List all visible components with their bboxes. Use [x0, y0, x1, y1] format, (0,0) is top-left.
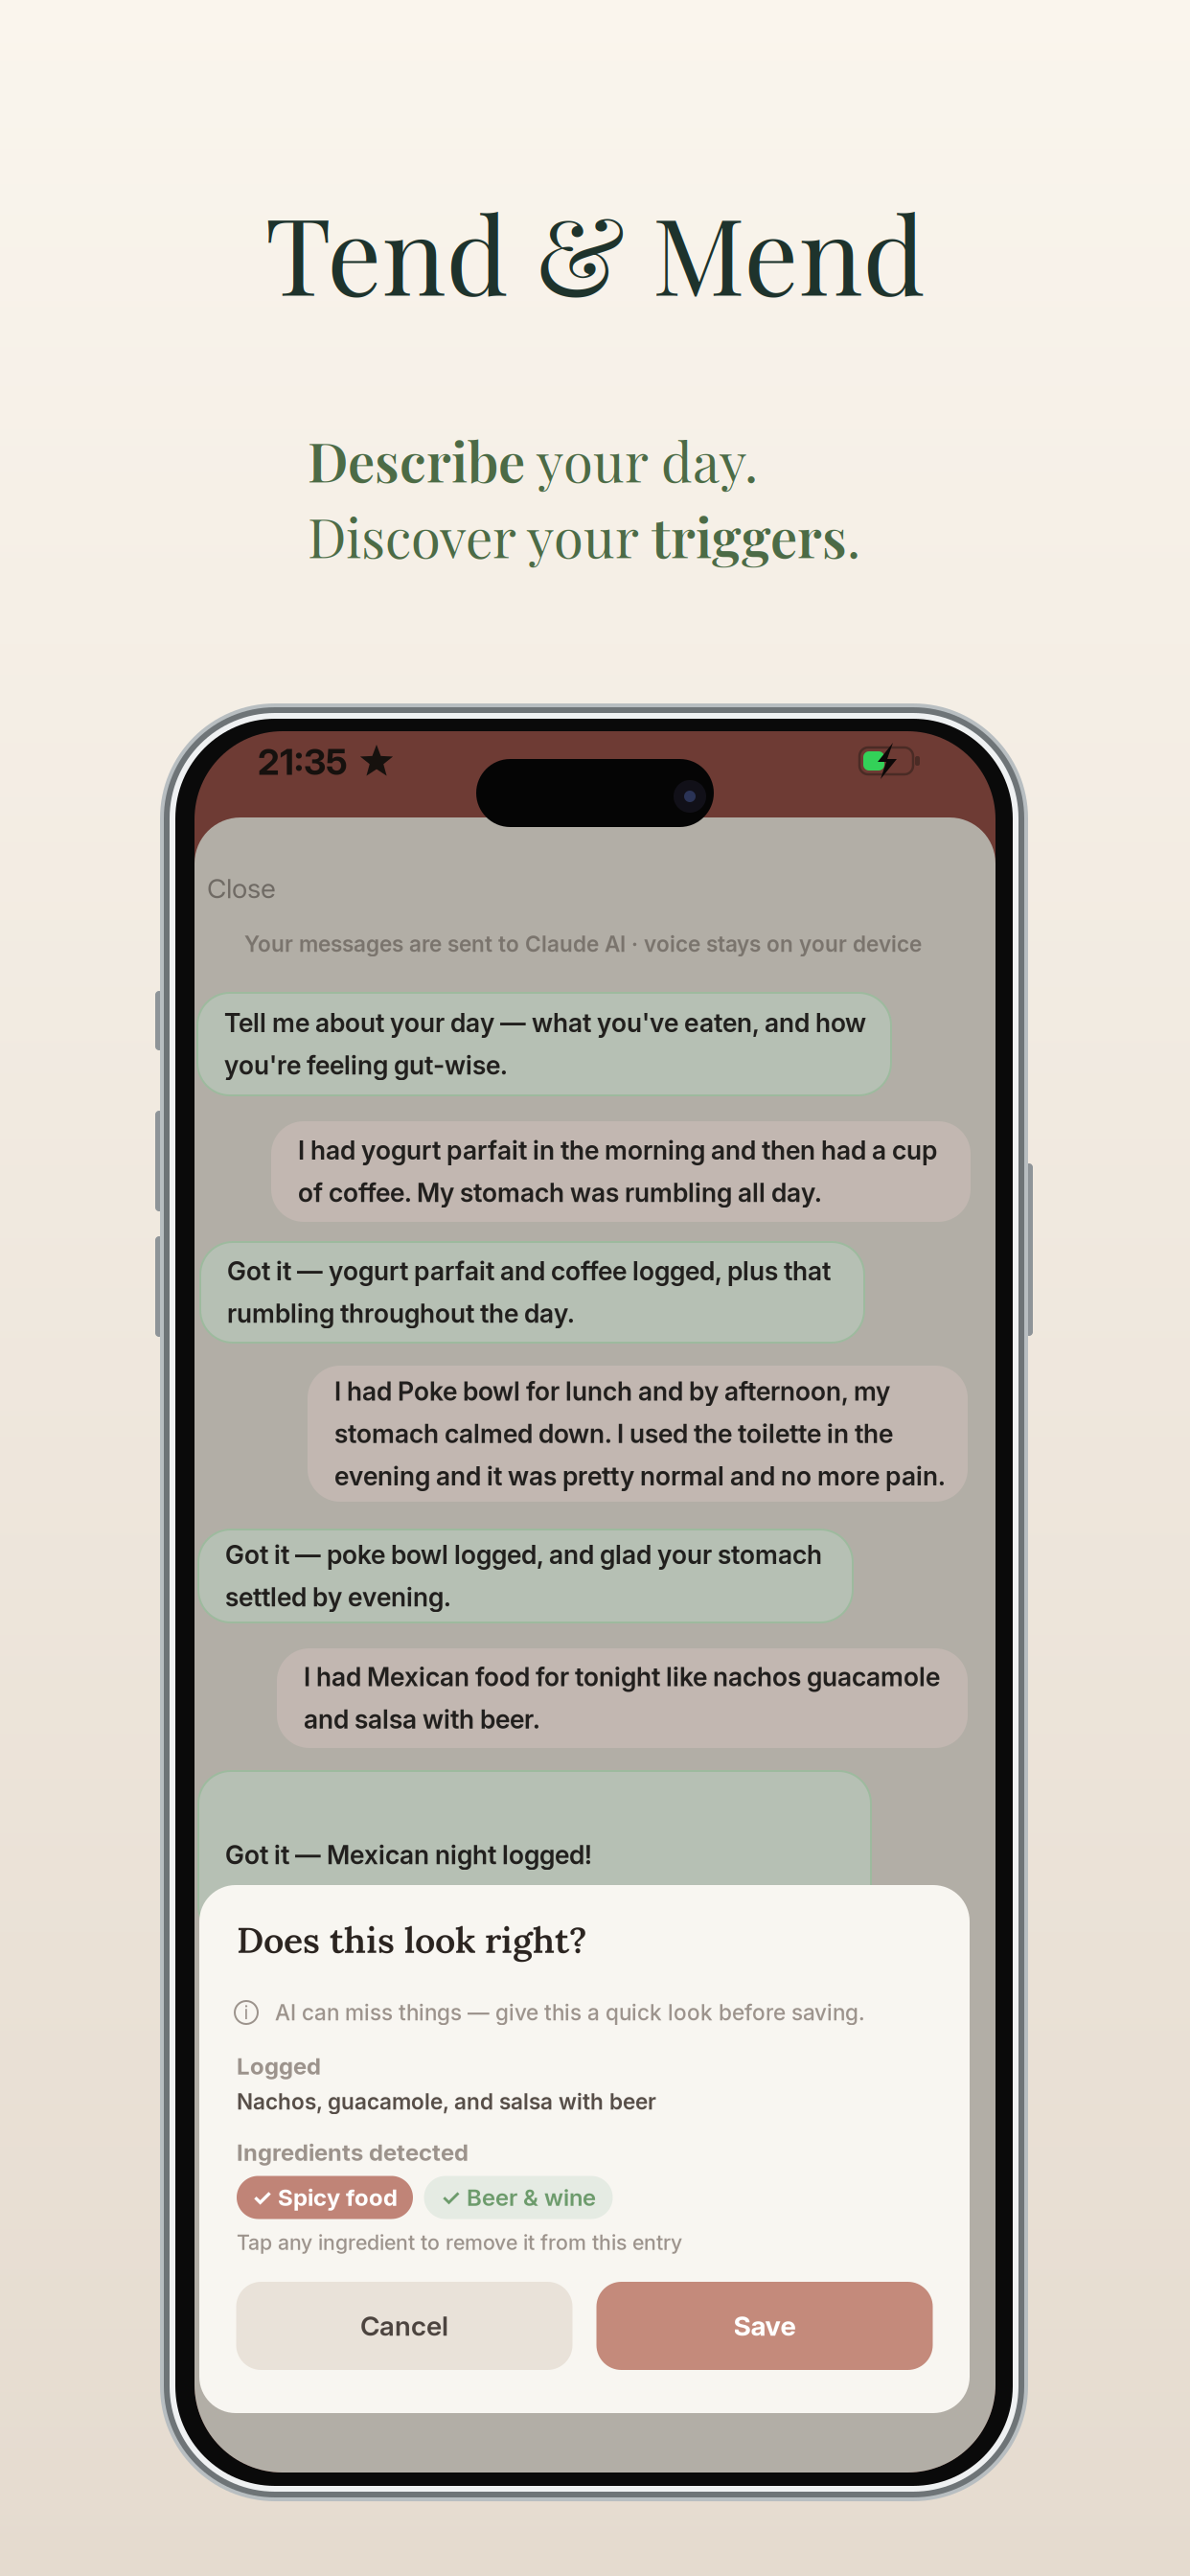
- staticText: Ingredients detected: [237, 2139, 469, 2166]
- button[interactable]: Close: [207, 862, 322, 915]
- button[interactable]: Save: [596, 2282, 933, 2370]
- button[interactable]: Cancel: [236, 2282, 572, 2370]
- staticText: Got it — Mexican night logged!: [225, 1839, 592, 1870]
- staticText: stomach calmed down. I used the toilette…: [334, 1418, 893, 1449]
- staticText: and salsa with beer.: [304, 1704, 540, 1735]
- staticText: I had yogurt parfait in the morning and …: [298, 1135, 937, 1166]
- staticText: Does this look right?: [237, 1917, 586, 1963]
- staticText: i: [244, 2001, 249, 2024]
- staticText: your day.: [525, 424, 758, 496]
- staticText: Logged: [237, 2052, 321, 2080]
- staticText: Close: [207, 872, 276, 905]
- staticText: I had Poke bowl for lunch and by afterno…: [334, 1376, 890, 1407]
- button[interactable]: ✓ Spicy food: [237, 2176, 413, 2219]
- staticText: Cancel: [360, 2310, 448, 2342]
- staticText: settled by evening.: [225, 1582, 451, 1613]
- staticText: evening and it was pretty normal and no …: [334, 1461, 946, 1492]
- staticText: Save: [733, 2310, 796, 2342]
- staticText: 21:35: [258, 740, 348, 784]
- staticText: Tap any ingredient to remove it from thi…: [237, 2230, 682, 2255]
- staticText: of coffee. My stomach was rumbling all d…: [298, 1177, 822, 1208]
- staticText: AI can miss things — give this a quick l…: [275, 1999, 865, 2026]
- staticText: Your messages are sent to Claude AI · vo…: [244, 931, 922, 957]
- staticText: Got it — poke bowl logged, and glad your…: [225, 1539, 822, 1570]
- staticText: rumbling throughout the day.: [227, 1298, 575, 1329]
- staticText: Describe: [308, 424, 525, 496]
- staticText: Tend & Mend: [265, 180, 925, 323]
- staticText: I had Mexican food for tonight like nach…: [304, 1661, 940, 1692]
- staticText: ✓ Spicy food: [252, 2184, 398, 2211]
- staticText: Got it — yogurt parfait and coffee logge…: [227, 1256, 831, 1287]
- staticText: triggers: [652, 500, 847, 571]
- staticText: you're feeling gut-wise.: [224, 1050, 508, 1081]
- staticText: .: [847, 500, 860, 571]
- staticText: ✓ Beer & wine: [441, 2184, 596, 2211]
- button[interactable]: ✓ Beer & wine: [424, 2176, 613, 2219]
- staticText: Discover your: [308, 500, 652, 571]
- staticText: Tell me about your day — what you've eat…: [224, 1007, 866, 1038]
- staticText: Nachos, guacamole, and salsa with beer: [237, 2088, 656, 2115]
